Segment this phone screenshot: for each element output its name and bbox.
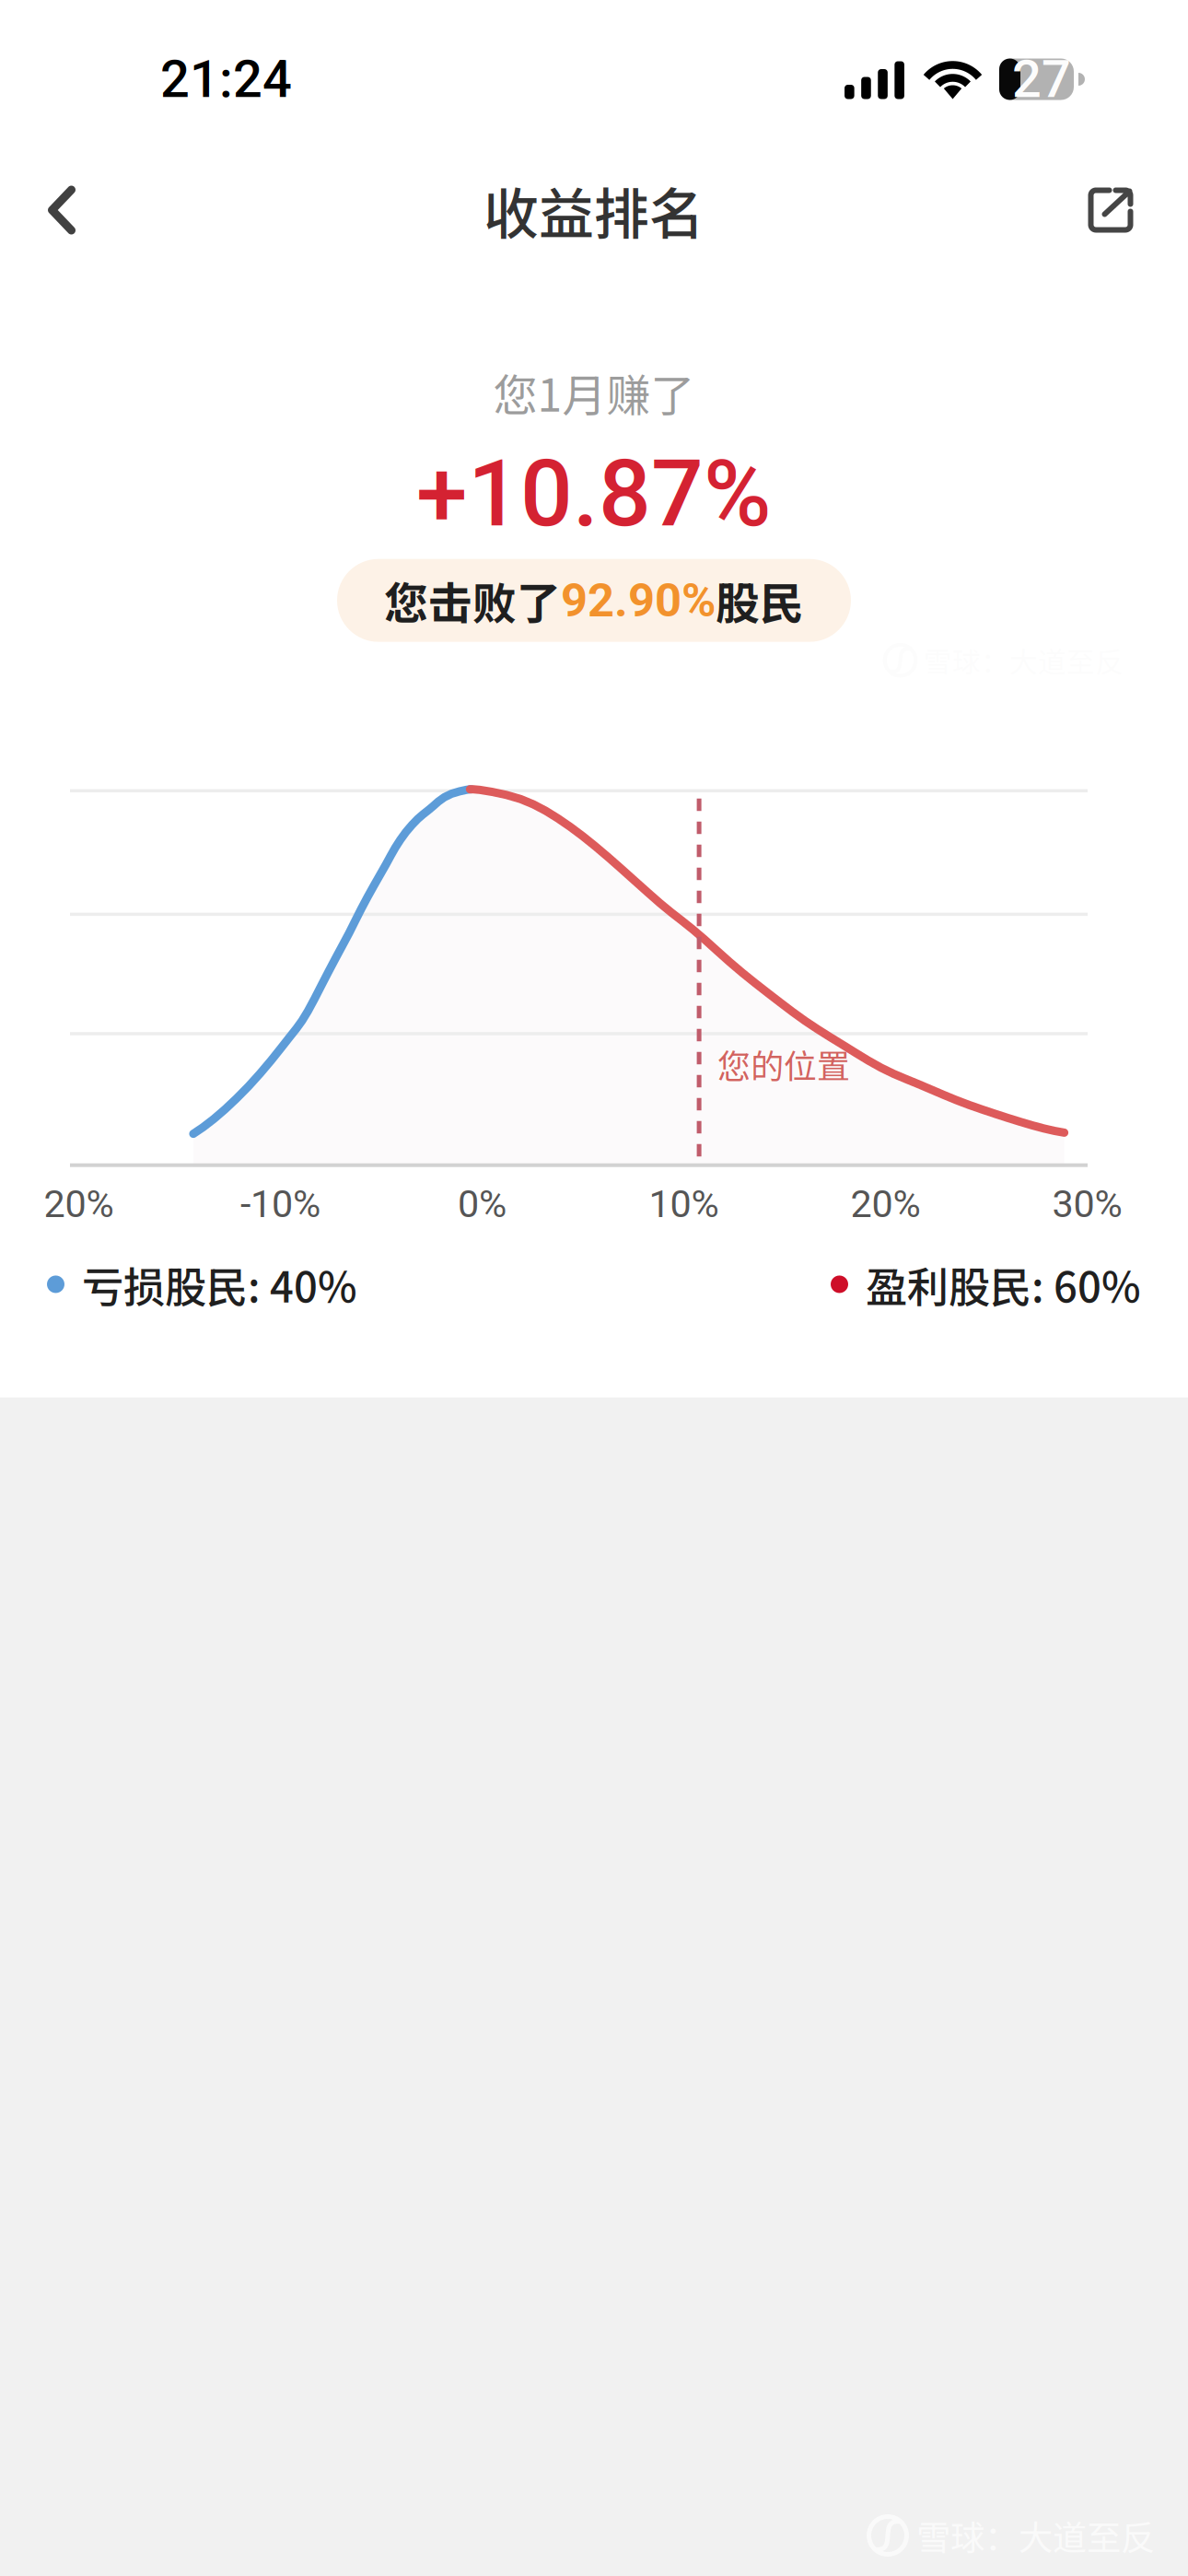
staticText: 20% (44, 1182, 114, 1226)
staticText: -10% (240, 1182, 320, 1226)
staticText: 27 (1012, 49, 1071, 109)
staticText: 30% (1052, 1182, 1122, 1226)
button[interactable]: 返回 (11, 158, 112, 262)
staticText: 10% (649, 1182, 719, 1226)
staticText: 盈利股民: 60% (866, 1254, 1141, 1314)
staticText: 0% (458, 1182, 507, 1226)
staticText: 亏损股民: 40% (82, 1254, 357, 1314)
staticText: 股民 (716, 568, 804, 632)
staticText: 雪球：大道至反 (916, 2511, 1155, 2560)
staticText: 20% (850, 1182, 920, 1226)
staticText: 92.90% (561, 573, 716, 628)
staticText: 您的位置 (717, 1040, 850, 1088)
staticText: 您击败了 (384, 568, 561, 632)
button[interactable]: 分享 (1060, 158, 1161, 262)
staticText: 收益排名 (483, 170, 705, 250)
staticText: +10.87% (416, 440, 772, 548)
staticText: 您1月赚了 (493, 360, 695, 424)
staticText: 21:24 (160, 49, 292, 109)
